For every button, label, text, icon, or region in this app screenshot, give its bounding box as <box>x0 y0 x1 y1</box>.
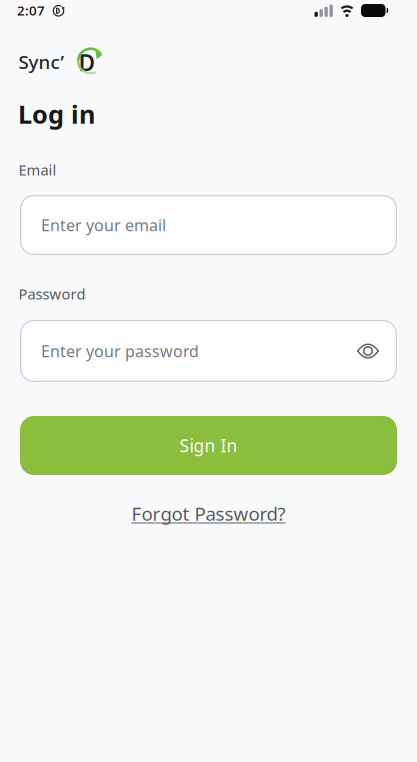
button[interactable]: Sign In <box>20 416 397 475</box>
staticText: Enter your password <box>41 340 199 362</box>
staticText: 2:07 <box>17 1 45 19</box>
staticText: Forgot Password? <box>131 501 285 526</box>
button[interactable]: Enter your email <box>20 195 397 255</box>
staticText: Log in <box>18 97 95 131</box>
button[interactable]: Enter your password <box>20 320 397 382</box>
button[interactable]: Show password <box>357 343 379 358</box>
staticText: Email <box>18 160 56 179</box>
staticText: Enter your email <box>41 214 166 236</box>
staticText: D <box>78 47 95 77</box>
staticText: Password <box>18 284 85 303</box>
button[interactable]: Forgot Password? <box>0 501 417 526</box>
staticText: Sync’ <box>18 49 63 74</box>
staticText: Sign In <box>179 434 237 457</box>
